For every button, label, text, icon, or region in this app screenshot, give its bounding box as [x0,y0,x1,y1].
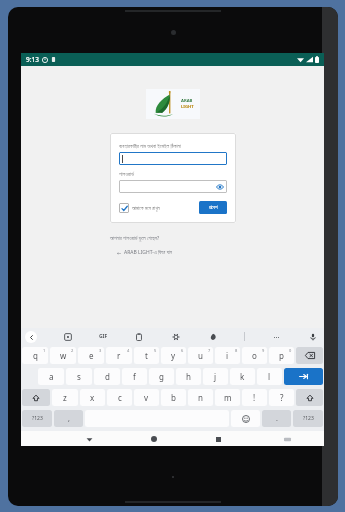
button[interactable]: আমাকে মনে রাখুন [119,203,160,213]
button[interactable]: b [161,389,186,406]
button[interactable]: ← [117,249,172,256]
button[interactable]: প্রবেশ [199,201,227,214]
staticText: c [118,392,122,403]
button[interactable]: t [134,347,159,364]
staticText: ?123 [32,415,43,422]
button[interactable]: w [50,347,76,364]
button[interactable]: Shift [22,389,50,406]
staticText: k [240,371,245,382]
button[interactable]: f [122,368,147,385]
staticText: আপনার পাসওয়ার্ড ভুলে গেছেন? [110,235,160,242]
staticText: 5 [154,348,157,353]
button[interactable]: Backspace [296,347,323,364]
button[interactable]: m [215,389,240,406]
staticText: e [89,350,94,361]
staticText: 4 [127,348,130,353]
staticText: 2 [71,348,74,353]
staticText: a [49,371,54,382]
button[interactable]: আপনার পাসওয়ার্ড ভুলে গেছেন? [110,235,160,242]
button[interactable]: ?123 [22,410,52,427]
staticText: 9:13 [26,55,39,64]
staticText: ব্যবহারকারীর নাম অথবা ইমেইল ঠিকানা [119,142,181,149]
button[interactable]: a [38,368,64,385]
staticText: r [117,350,121,361]
staticText: d [105,371,110,382]
staticText: s [77,371,81,382]
staticText: প্রবেশ [209,205,218,210]
button[interactable]: , [54,410,83,427]
button[interactable]: j [203,368,228,385]
button[interactable]: h [176,368,201,385]
staticText: ! [253,392,256,403]
button[interactable]: GIF [99,333,108,340]
staticText: ? [280,392,284,403]
staticText: o [252,350,257,361]
button[interactable]: Keyboard switcher [280,432,294,446]
staticText: p [279,350,284,361]
staticText: পাসওয়ার্ড [119,172,135,177]
staticText: . [276,414,278,424]
button[interactable]: Next field [284,368,323,385]
staticText: x [90,392,95,403]
button[interactable]: i [215,347,240,364]
staticText: 0 [289,348,292,353]
button[interactable]: Clipboard [133,331,145,343]
button[interactable]: y [161,347,186,364]
button[interactable]: r [106,347,132,364]
staticText: ARAB LIGHT-এ ফিরে যান [124,249,172,256]
button[interactable]: Settings [170,331,182,343]
staticText: u [198,350,203,361]
staticText: ARAB [181,98,193,104]
button[interactable]: Emoji [231,410,260,427]
staticText: 6 [181,348,184,353]
button[interactable]: p [269,347,294,364]
staticText: h [186,371,191,382]
button[interactable]: ? [269,389,294,406]
staticText: f [133,371,136,382]
button[interactable]: Stickers [62,331,74,343]
button[interactable]: z [52,389,78,406]
button[interactable] [119,152,227,165]
button[interactable]: u [188,347,213,364]
staticText: l [268,371,271,382]
staticText: b [171,392,176,403]
button[interactable]: Show password [119,180,227,193]
button[interactable]: ?123 [293,410,323,427]
button[interactable]: Voice input [307,331,319,343]
button[interactable]: . [262,410,291,427]
button[interactable]: Theme [207,331,219,343]
staticText: z [63,392,67,403]
button[interactable]: c [107,389,132,406]
button[interactable]: x [80,389,105,406]
staticText: 9 [262,348,265,353]
button[interactable]: Show password [215,182,224,191]
button[interactable]: s [66,368,92,385]
staticText: 3 [99,348,102,353]
staticText: আমাকে মনে রাখুন [132,205,160,212]
button[interactable]: v [134,389,159,406]
staticText: q [33,350,38,361]
staticText: v [144,392,149,403]
button[interactable]: q [22,347,48,364]
button[interactable]: d [94,368,120,385]
staticText: w [60,350,67,361]
staticText: , [68,414,70,424]
staticText: ?123 [303,415,314,422]
button[interactable]: Hide keyboard [82,432,96,446]
button[interactable]: n [188,389,213,406]
button[interactable]: l [257,368,282,385]
button[interactable]: e [78,347,104,364]
button[interactable]: ! [242,389,267,406]
button[interactable]: Home [147,432,161,446]
button[interactable]: k [230,368,255,385]
button[interactable]: g [149,368,174,385]
button[interactable]: o [242,347,267,364]
button[interactable]: Recent apps [211,432,225,446]
button[interactable]: More options [270,331,282,343]
staticText: ← [117,250,122,256]
button[interactable]: Shift [296,389,323,406]
staticText: j [214,371,217,382]
button[interactable]: Back [25,331,37,343]
staticText: LIGHT [181,104,194,110]
